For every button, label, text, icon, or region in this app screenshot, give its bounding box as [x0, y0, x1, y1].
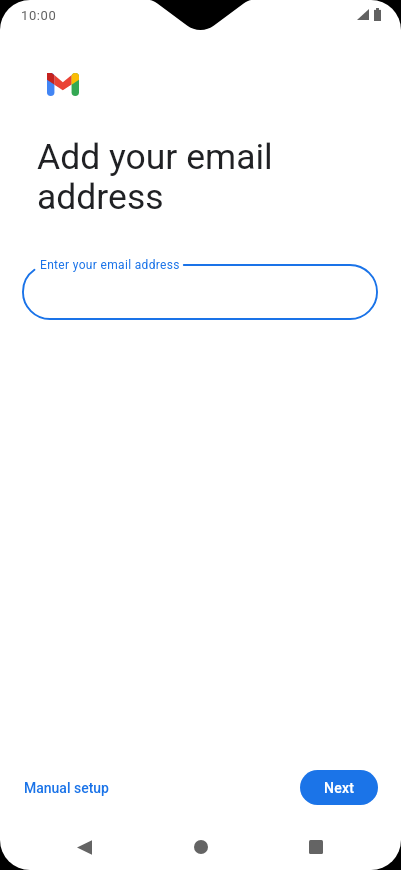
staticText: Enter your email address: [40, 258, 180, 272]
staticText: Next: [324, 780, 355, 796]
button[interactable]: Manual setup: [16, 773, 117, 803]
button[interactable]: Home: [177, 823, 225, 870]
button[interactable]: Back: [60, 823, 108, 870]
staticText: 10:00: [21, 8, 57, 23]
staticText: Manual setup: [24, 780, 109, 796]
button[interactable]: Next: [300, 770, 378, 805]
staticText: Add your email address: [37, 136, 273, 218]
button[interactable]: Recents: [292, 823, 340, 870]
button[interactable]: Enter your email address: [22, 264, 378, 320]
